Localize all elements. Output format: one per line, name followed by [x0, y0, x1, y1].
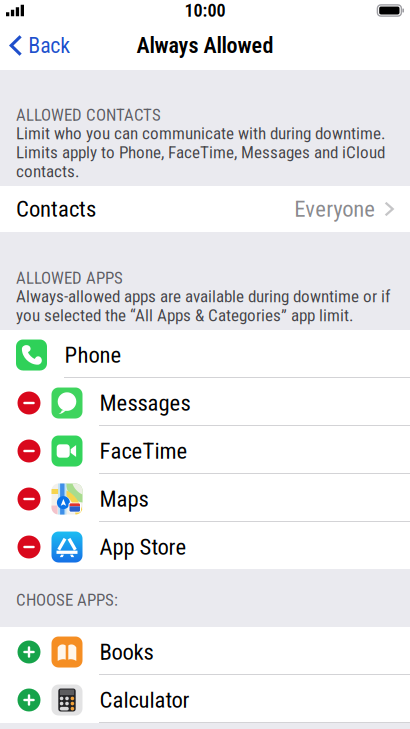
staticText: ALLOWED APPS: [16, 268, 123, 288]
staticText: Messages: [99, 390, 190, 416]
button[interactable]: Books: [0, 627, 410, 674]
button[interactable]: Maps: [0, 474, 410, 521]
staticText: FaceTime: [99, 438, 187, 464]
button[interactable]: Contacts: [0, 186, 410, 232]
button[interactable]: Calculator: [0, 675, 410, 722]
staticText: you selected the “All Apps & Categories”…: [16, 305, 354, 325]
staticText: Books: [99, 639, 153, 665]
staticText: Limits apply to Phone, FaceTime, Message…: [16, 142, 385, 162]
staticText: App Store: [99, 534, 186, 560]
staticText: Everyone: [294, 196, 375, 222]
staticText: Phone: [64, 342, 121, 368]
staticText: Limit who you can communicate with durin…: [16, 123, 386, 143]
button[interactable]: App Store: [0, 522, 410, 569]
staticText: Back: [28, 33, 70, 58]
staticText: ALLOWED CONTACTS: [16, 105, 161, 125]
button[interactable]: FaceTime: [0, 426, 410, 473]
staticText: Always Allowed: [136, 32, 273, 58]
staticText: Always-allowed apps are available during…: [16, 286, 390, 306]
staticText: Contacts: [16, 196, 96, 222]
staticText: CHOOSE APPS:: [16, 590, 118, 610]
staticText: Maps: [99, 486, 148, 512]
staticText: contacts.: [16, 161, 80, 181]
staticText: Calculator: [99, 687, 189, 713]
staticText: 10:00: [184, 0, 225, 21]
button[interactable]: Back: [0, 21, 80, 70]
button[interactable]: Phone: [0, 330, 410, 377]
button[interactable]: Messages: [0, 378, 410, 425]
